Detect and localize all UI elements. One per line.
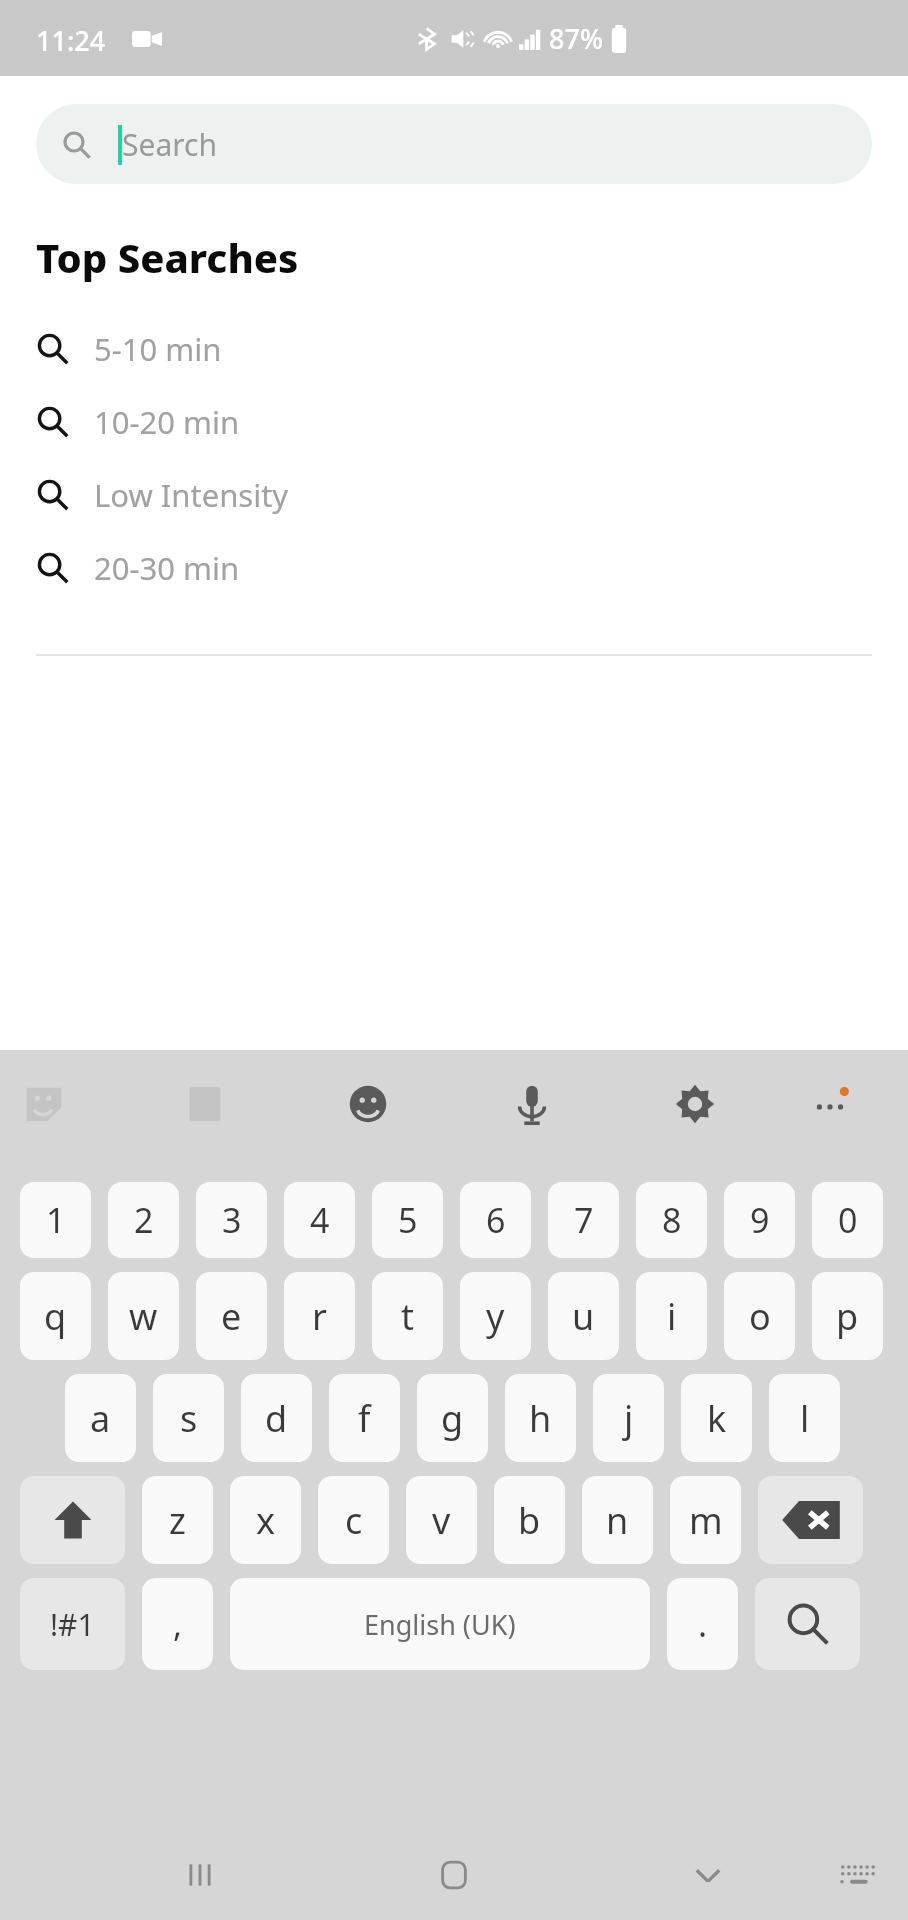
button[interactable]: g (417, 1374, 488, 1462)
staticText: r (312, 1292, 327, 1341)
button[interactable]: e (196, 1272, 267, 1360)
staticText: l (800, 1394, 810, 1443)
staticText: z (169, 1496, 186, 1545)
staticText: w (129, 1292, 158, 1341)
staticText: f (358, 1394, 371, 1443)
staticText: . (698, 1601, 708, 1647)
staticText: Top Searches (36, 230, 299, 284)
button[interactable]: d (241, 1374, 312, 1462)
button[interactable]: 4 (284, 1182, 355, 1258)
staticText: t (401, 1292, 414, 1341)
button[interactable]: 9 (724, 1182, 795, 1258)
button[interactable]: , (142, 1578, 213, 1670)
button[interactable]: n (582, 1476, 653, 1564)
button[interactable]: 5-10 min (0, 312, 908, 385)
staticText: 5 (398, 1197, 418, 1243)
staticText: 9 (750, 1197, 770, 1243)
button[interactable]: Switch keyboard (813, 1830, 903, 1920)
button[interactable]: Voice input (498, 1070, 566, 1138)
staticText: , (173, 1601, 183, 1647)
button[interactable]: x (230, 1476, 301, 1564)
button[interactable]: Keyboard settings (661, 1070, 729, 1138)
button[interactable]: z (142, 1476, 213, 1564)
staticText: d (265, 1394, 288, 1443)
button[interactable]: a (65, 1374, 136, 1462)
button[interactable]: 20-30 min (0, 531, 908, 604)
button[interactable]: r (284, 1272, 355, 1360)
staticText: q (44, 1292, 67, 1341)
button[interactable]: 6 (460, 1182, 531, 1258)
staticText: 2 (134, 1197, 154, 1243)
button[interactable]: Low Intensity (0, 458, 908, 531)
button[interactable]: 8 (636, 1182, 707, 1258)
button[interactable]: 3 (196, 1182, 267, 1258)
staticText: g (441, 1394, 464, 1443)
staticText: 11:24 (36, 22, 106, 59)
staticText: c (345, 1496, 363, 1545)
button[interactable]: English (UK) (230, 1578, 650, 1670)
staticText: e (221, 1292, 242, 1341)
button[interactable]: . (667, 1578, 738, 1670)
button[interactable]: Recent apps (155, 1830, 245, 1920)
staticText: 87% (549, 20, 603, 57)
button[interactable]: Backspace (758, 1476, 863, 1564)
button[interactable]: t (372, 1272, 443, 1360)
button[interactable]: c (318, 1476, 389, 1564)
staticText: 4 (310, 1197, 330, 1243)
button[interactable]: Hide keyboard (663, 1830, 753, 1920)
button[interactable]: Search (755, 1578, 860, 1670)
staticText: 1 (46, 1197, 66, 1243)
button[interactable]: !#1 (20, 1578, 125, 1670)
button[interactable]: y (460, 1272, 531, 1360)
staticText: English (UK) (364, 1606, 516, 1643)
button[interactable]: s (153, 1374, 224, 1462)
staticText: k (707, 1394, 727, 1443)
staticText: y (486, 1292, 505, 1341)
button[interactable]: 7 (548, 1182, 619, 1258)
staticText: 3 (222, 1197, 242, 1243)
staticText: Low Intensity (94, 474, 289, 516)
button[interactable]: o (724, 1272, 795, 1360)
button[interactable]: Search (36, 104, 872, 184)
button[interactable]: 2 (108, 1182, 179, 1258)
button[interactable]: More options (796, 1070, 864, 1138)
button[interactable]: j (593, 1374, 664, 1462)
button[interactable]: u (548, 1272, 619, 1360)
button[interactable]: 1 (20, 1182, 91, 1258)
button[interactable]: b (494, 1476, 565, 1564)
button[interactable]: h (505, 1374, 576, 1462)
staticText: p (836, 1292, 859, 1341)
button[interactable]: Emoji (334, 1070, 402, 1138)
staticText: h (529, 1394, 552, 1443)
button[interactable]: f (329, 1374, 400, 1462)
button[interactable]: i (636, 1272, 707, 1360)
staticText: v (432, 1496, 451, 1545)
button[interactable]: 0 (812, 1182, 883, 1258)
staticText: i (667, 1292, 677, 1341)
button[interactable]: 5 (372, 1182, 443, 1258)
button[interactable]: p (812, 1272, 883, 1360)
button[interactable]: q (20, 1272, 91, 1360)
button[interactable]: v (406, 1476, 477, 1564)
staticText: n (606, 1496, 629, 1545)
button[interactable]: w (108, 1272, 179, 1360)
staticText: x (256, 1496, 276, 1545)
staticText: o (749, 1292, 771, 1341)
button[interactable]: k (681, 1374, 752, 1462)
button[interactable]: Home (409, 1830, 499, 1920)
staticText: 20-30 min (94, 547, 240, 589)
button[interactable]: 10-20 min (0, 385, 908, 458)
staticText: 10-20 min (94, 401, 240, 443)
staticText: a (90, 1394, 111, 1443)
staticText: 0 (838, 1197, 858, 1243)
button[interactable]: Shift (20, 1476, 125, 1564)
button[interactable]: m (670, 1476, 741, 1564)
button[interactable]: l (769, 1374, 840, 1462)
staticText: b (518, 1496, 541, 1545)
button[interactable]: Stickers (10, 1070, 78, 1138)
staticText: Search (122, 124, 217, 165)
staticText: 5-10 min (94, 328, 222, 370)
staticText: m (689, 1496, 723, 1545)
button[interactable]: GIF (171, 1070, 239, 1138)
staticText: 6 (486, 1197, 506, 1243)
